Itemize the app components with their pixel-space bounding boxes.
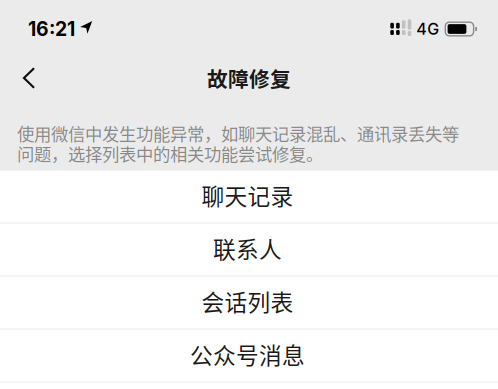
staticText: 故障修复	[207, 63, 291, 93]
staticText: 4G	[416, 19, 439, 39]
staticText: 联系人	[213, 232, 282, 264]
button[interactable]: 公众号消息	[0, 330, 498, 382]
button[interactable]: 返回	[7, 56, 51, 100]
staticText: 16:21	[28, 17, 75, 41]
staticText: 会话列表	[201, 285, 293, 317]
button[interactable]: 联系人	[0, 224, 498, 276]
staticText: 聊天记录	[201, 179, 293, 211]
button[interactable]: 会话列表	[0, 277, 498, 329]
staticText: 公众号消息	[190, 338, 305, 370]
button[interactable]: 聊天记录	[0, 171, 498, 223]
staticText: 使用微信中发生功能异常，如聊天记录混乱、通讯录丢失等问题，选择列表中的相关功能尝…	[17, 123, 459, 164]
